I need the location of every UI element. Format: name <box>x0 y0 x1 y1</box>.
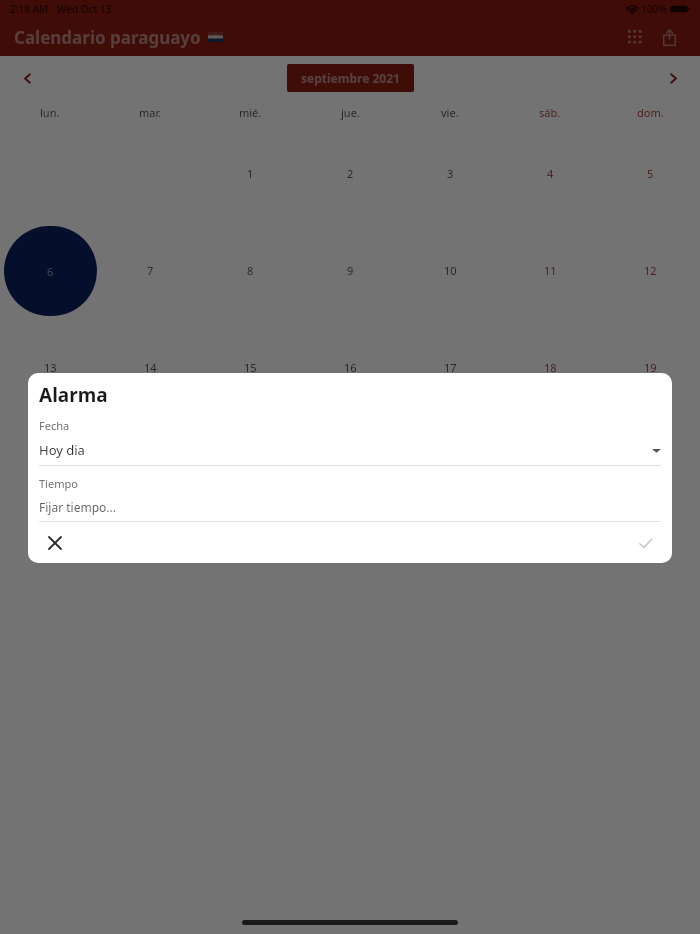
staticText: 2 <box>347 166 354 181</box>
staticText: lun. <box>40 105 60 120</box>
staticText: 16 <box>344 360 357 375</box>
staticText: Tiempo <box>39 476 78 491</box>
button[interactable]: 13 <box>0 319 100 416</box>
staticText: sáb. <box>539 105 561 120</box>
staticText: mié. <box>239 105 262 120</box>
button[interactable]: Cancel <box>39 527 71 559</box>
staticText: mar. <box>139 105 162 120</box>
button[interactable]: Vacaciones <box>50 438 330 465</box>
button[interactable]: Hoy dia <box>39 441 661 459</box>
button[interactable]: Confirm <box>629 527 661 559</box>
staticText: 3 <box>447 166 454 181</box>
button[interactable]: 11 <box>500 222 600 319</box>
button[interactable]: Previous month <box>14 65 40 91</box>
staticText: Fecha <box>39 418 70 433</box>
staticText: 4 <box>547 166 554 181</box>
button[interactable]: 12 <box>600 222 700 319</box>
staticText: vie. <box>441 105 459 120</box>
button[interactable]: 19 <box>600 319 700 416</box>
staticText: 5 <box>647 166 654 181</box>
staticText: Alarma <box>39 382 108 408</box>
staticText: 100% <box>641 2 667 16</box>
staticText: 7 <box>147 263 154 278</box>
staticText: 10 <box>444 263 457 278</box>
staticText: Fijar tiempo... <box>39 499 116 515</box>
button[interactable]: Apps grid <box>618 20 652 54</box>
button[interactable]: Alarma <box>50 492 330 519</box>
staticText: 19 <box>644 360 657 375</box>
button[interactable]: 6 <box>4 226 97 316</box>
button[interactable]: 10 <box>400 222 500 319</box>
staticText: 6 <box>47 264 54 279</box>
staticText: 15 <box>244 360 257 375</box>
staticText: 11 <box>544 263 557 278</box>
button[interactable]: 18 <box>500 319 600 416</box>
button[interactable]: 4 <box>500 125 600 222</box>
button[interactable]: 5 <box>600 125 700 222</box>
button[interactable]: Share <box>652 20 686 54</box>
staticText: Wed Oct 13 <box>57 2 112 16</box>
button[interactable]: 14 <box>100 319 200 416</box>
button[interactable]: 15 <box>200 319 300 416</box>
staticText: 18 <box>544 360 557 375</box>
staticText: 14 <box>144 360 157 375</box>
staticText: Calendario paraguayo <box>14 26 201 49</box>
button[interactable]: Next month <box>660 65 686 91</box>
staticText: 9 <box>347 263 354 278</box>
button[interactable]: Fijar tiempo... <box>39 499 661 515</box>
staticText: 13 <box>44 360 57 375</box>
staticText: dom. <box>637 105 664 120</box>
staticText: septiembre 2021 <box>301 70 400 86</box>
staticText: 12 <box>644 263 657 278</box>
button[interactable]: 17 <box>400 319 500 416</box>
staticText: 1 <box>247 166 254 181</box>
staticText: jue. <box>341 105 360 120</box>
staticText: 2:18 AM <box>10 2 49 16</box>
staticText: 17 <box>444 360 457 375</box>
button[interactable]: 16 <box>300 319 400 416</box>
button[interactable]: septiembre 2021 <box>301 70 400 86</box>
staticText: Hoy dia <box>39 441 85 459</box>
staticText: 8 <box>247 263 254 278</box>
